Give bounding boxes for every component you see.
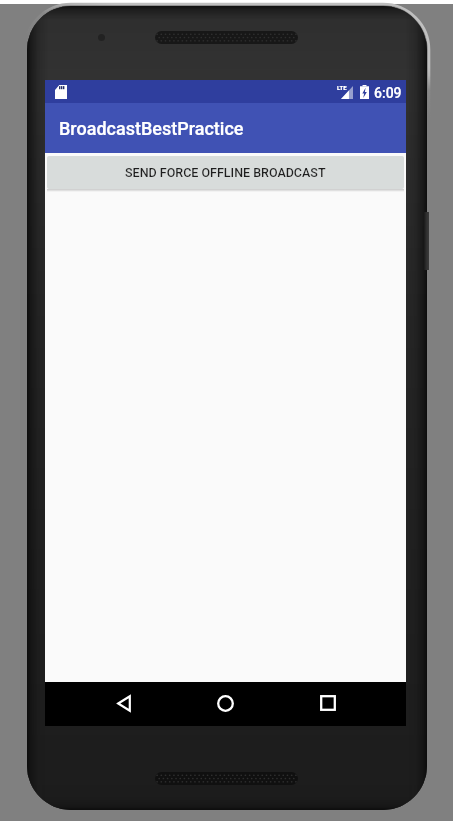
button[interactable]: SEND FORCE OFFLINE BROADCAST: [47, 156, 404, 189]
button[interactable]: Recent apps: [305, 681, 350, 725]
button[interactable]: Back: [101, 681, 146, 725]
staticText: BroadcastBestPractice: [59, 118, 244, 139]
staticText: 6:09: [374, 85, 402, 101]
staticText: SEND FORCE OFFLINE BROADCAST: [125, 165, 326, 180]
button[interactable]: Home: [203, 681, 248, 725]
staticText: LTE: [337, 84, 347, 91]
